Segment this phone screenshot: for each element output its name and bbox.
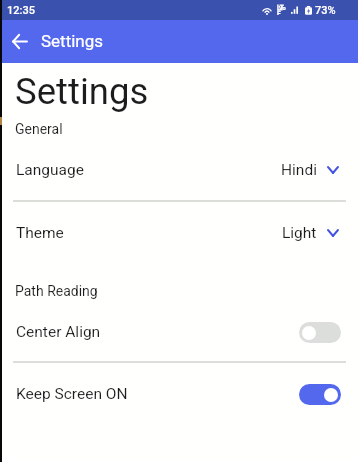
button[interactable]: Language	[0, 159, 358, 181]
staticText: Light	[282, 224, 317, 242]
staticText: Hindi	[281, 161, 317, 179]
staticText: Theme	[16, 224, 64, 242]
button[interactable]: Toggle	[299, 322, 341, 343]
staticText: Center Align	[16, 323, 101, 341]
staticText: Vo	[279, 5, 286, 11]
button[interactable]: Back	[5, 27, 34, 56]
staticText: 12:35	[7, 4, 35, 17]
staticText: General	[15, 121, 63, 137]
staticText: Language	[16, 161, 84, 179]
staticText: Path Reading	[15, 283, 98, 299]
staticText: LTE	[277, 4, 287, 15]
button[interactable]: Center Align	[0, 321, 358, 343]
staticText: Settings	[15, 70, 149, 113]
staticText: Settings	[41, 31, 104, 51]
staticText: Keep Screen ON	[16, 385, 128, 403]
staticText: 73%	[315, 4, 336, 17]
button[interactable]: Theme	[0, 222, 358, 244]
button[interactable]: Keep Screen ON	[0, 383, 358, 405]
button[interactable]: Toggle	[299, 384, 341, 405]
